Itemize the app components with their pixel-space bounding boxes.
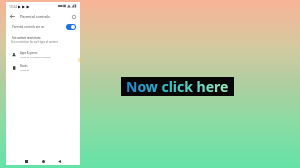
button[interactable]: Parental controls are on: [6, 22, 80, 32]
button[interactable]: Help: [69, 12, 78, 21]
staticText: 10:24: [9, 5, 18, 9]
staticText: Parental controls are on: [12, 25, 45, 29]
staticText: Parental controls: [20, 14, 50, 19]
button[interactable]: Apps & games: [6, 49, 80, 62]
button[interactable]: Home: [37, 155, 49, 167]
staticText: Set a restriction for each type of conte…: [11, 40, 58, 44]
button[interactable]: Back: [8, 12, 17, 21]
button[interactable]: Now click here: [121, 77, 234, 96]
button[interactable]: Books: [6, 62, 80, 75]
button[interactable]: Back: [53, 155, 65, 167]
staticText: Allow all: [20, 68, 30, 71]
staticText: Now click here: [126, 77, 229, 96]
staticText: Apps & games: [20, 51, 38, 55]
staticText: Books: [20, 64, 28, 68]
staticText: Set content restrictions: [12, 36, 41, 40]
button[interactable]: Recents: [20, 155, 32, 167]
staticText: Allow all, including violence: [20, 55, 51, 58]
